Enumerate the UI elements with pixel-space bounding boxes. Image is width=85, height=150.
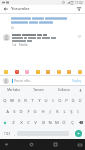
button[interactable]: N — [47, 117, 53, 128]
button[interactable]: Kullanıcı — [51, 86, 76, 94]
button[interactable]: P — [63, 95, 69, 106]
staticText: I — [77, 109, 79, 115]
button[interactable]: C — [25, 117, 31, 128]
button[interactable]: H — [40, 106, 46, 117]
staticText: ?123 — [4, 132, 11, 136]
button[interactable]: Emoji — [35, 69, 40, 74]
staticText: Tamam — [33, 88, 44, 92]
staticText: J — [49, 109, 51, 115]
button[interactable]: Send — [74, 128, 83, 139]
button[interactable]: R — [22, 95, 28, 106]
staticText: . — [71, 131, 72, 136]
staticText: Ç — [71, 120, 74, 126]
staticText: Z — [12, 120, 15, 126]
staticText: Kullanıcı — [58, 88, 70, 92]
staticText: O — [58, 98, 62, 104]
button[interactable]: Back — [3, 6, 9, 12]
button[interactable]: Tamam — [26, 86, 51, 94]
button[interactable]: F — [25, 106, 31, 117]
button[interactable]: W — [9, 95, 15, 106]
button[interactable]: M — [54, 117, 60, 128]
button[interactable]: X — [18, 117, 24, 128]
button[interactable]: Y — [36, 95, 42, 106]
staticText: C — [27, 120, 30, 126]
staticText: B — [42, 120, 45, 126]
staticText: Q — [3, 98, 7, 104]
button[interactable]: J — [47, 106, 53, 117]
button[interactable]: E — [16, 95, 22, 106]
button[interactable]: G — [32, 106, 38, 117]
button[interactable]: B — [40, 117, 46, 128]
button[interactable]: O — [57, 95, 63, 106]
staticText: M — [55, 120, 59, 126]
button[interactable]: Recents — [50, 139, 61, 150]
button[interactable]: Like — [77, 34, 82, 39]
button[interactable]: Ş — [68, 106, 74, 117]
staticText: A — [6, 109, 9, 115]
button[interactable]: Home — [26, 139, 37, 150]
button[interactable]: V — [32, 117, 38, 128]
button[interactable]: D — [18, 106, 24, 117]
button[interactable]: Paylaş — [71, 78, 82, 84]
button[interactable]: S — [11, 106, 17, 117]
staticText: Ğ — [71, 98, 75, 104]
button[interactable]: Shift — [0, 117, 9, 128]
button[interactable]: Ü — [77, 95, 83, 106]
staticText: Ş — [70, 109, 73, 115]
button[interactable]: Yorum ekle... — [12, 79, 71, 83]
staticText: T — [31, 98, 34, 104]
button[interactable]: Emoji — [24, 69, 29, 74]
staticText: Ö — [62, 120, 66, 126]
button[interactable]: Comma — [12, 128, 17, 139]
staticText: 11:02 — [75, 1, 83, 5]
staticText: P — [65, 98, 68, 104]
staticText: Merhaba — [7, 88, 20, 92]
button[interactable]: I — [75, 106, 81, 117]
staticText: U — [44, 98, 48, 104]
button[interactable]: Emoji — [77, 69, 82, 74]
button[interactable]: L — [61, 106, 67, 117]
button[interactable]: Emoji — [3, 69, 8, 74]
button[interactable]: Q — [2, 95, 8, 106]
button[interactable]: A — [4, 106, 10, 117]
button[interactable]: U — [43, 95, 49, 106]
button[interactable]: I — [50, 95, 56, 106]
button[interactable]: Backspace — [76, 117, 85, 128]
button[interactable]: Dismiss keyboard — [0, 139, 13, 150]
staticText: N — [48, 120, 52, 126]
button[interactable]: T — [29, 95, 35, 106]
button[interactable]: 1sa — [0, 30, 85, 47]
button[interactable]: Voice input — [76, 86, 85, 94]
staticText: G — [33, 109, 37, 115]
button[interactable]: K — [54, 106, 60, 117]
staticText: Ü — [78, 98, 82, 104]
staticText: Paylaş — [72, 79, 81, 83]
button[interactable]: Merhaba — [0, 86, 26, 94]
staticText: X — [20, 120, 23, 126]
button[interactable]: Emoji — [66, 69, 71, 74]
button[interactable]: Emoji — [14, 69, 19, 74]
staticText: Yorumlar — [11, 6, 30, 12]
button[interactable]: ?123 — [2, 128, 12, 139]
staticText: V — [34, 120, 37, 126]
button[interactable]: Ğ — [70, 95, 76, 106]
button[interactable]: Emoji — [56, 69, 61, 74]
staticText: 2s — [11, 26, 14, 30]
staticText: W — [10, 98, 14, 104]
button[interactable]: Switch keyboard — [74, 139, 85, 150]
staticText: 1sa — [12, 43, 17, 47]
staticText: I — [52, 98, 54, 104]
staticText: , — [14, 131, 15, 136]
staticText: Yorum ekle... — [14, 79, 33, 83]
staticText: R — [24, 98, 27, 104]
staticText: L — [63, 109, 66, 115]
staticText: H — [41, 109, 45, 115]
button[interactable]: Ö — [61, 117, 67, 128]
button[interactable]: Ç — [69, 117, 75, 128]
button[interactable]: Z — [10, 117, 16, 128]
button[interactable]: Filter — [76, 6, 82, 12]
staticText: Yanıtla — [19, 43, 28, 47]
button[interactable]: Emoji — [45, 69, 50, 74]
